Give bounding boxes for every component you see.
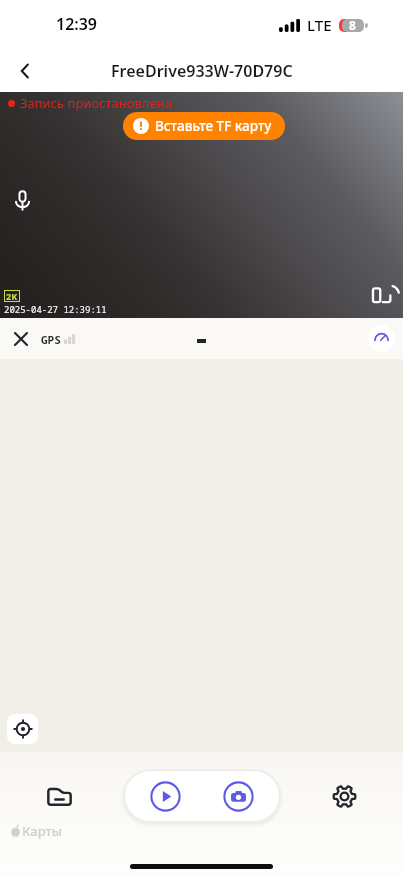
staticText: Вставьте TF карту (155, 117, 272, 135)
staticText: FreeDrive933W-70D79C (111, 60, 293, 82)
staticText: LTE (307, 15, 332, 35)
button[interactable]: Close (8, 326, 34, 352)
button[interactable]: Switch camera (369, 282, 395, 308)
staticText: 2025-04-27 12:39:11 (4, 303, 107, 315)
button[interactable]: Settings (322, 774, 366, 818)
staticText: GPS (41, 332, 61, 347)
staticText: Карты (22, 822, 62, 840)
button[interactable]: Files (37, 774, 81, 818)
staticText: 12:39 (56, 13, 98, 35)
staticText: Запись приостановлена (20, 94, 172, 112)
button[interactable]: Locate me (7, 714, 38, 744)
button[interactable]: Вставьте TF карту (123, 112, 285, 140)
button[interactable]: Play (146, 777, 184, 815)
staticText: 8 (349, 17, 356, 33)
button[interactable]: Speed (368, 325, 395, 352)
button[interactable]: Microphone (7, 185, 37, 215)
button[interactable]: Back (7, 53, 43, 89)
staticText: 2K (6, 290, 18, 302)
button[interactable]: Capture photo (219, 777, 257, 815)
